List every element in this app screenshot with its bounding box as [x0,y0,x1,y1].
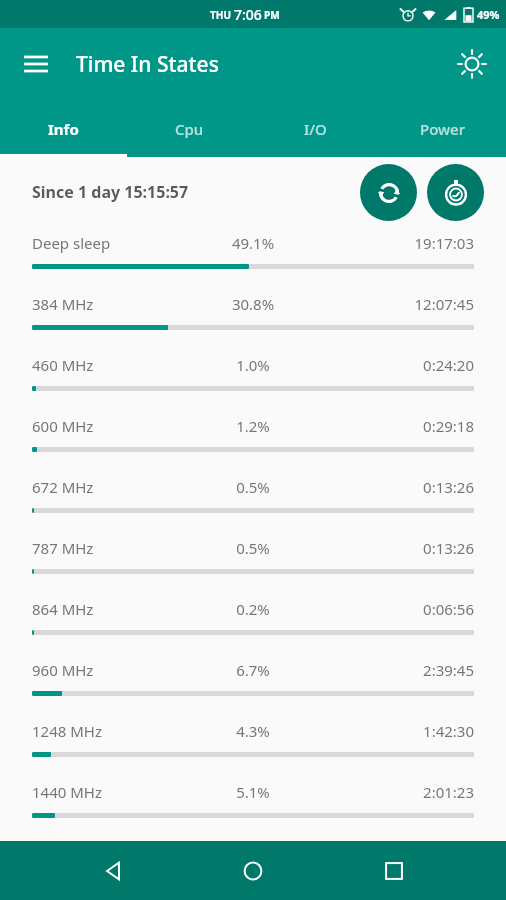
staticText: 672 MHz [32,477,207,497]
staticText: 0:24:20 [299,355,474,375]
staticText: 0:13:26 [299,477,474,497]
button[interactable]: 787 MHz [0,532,506,593]
staticText: 1248 MHz [32,721,207,741]
staticText: 5.1% [207,782,299,802]
staticText: Deep sleep [32,233,207,253]
button[interactable]: 460 MHz [0,349,506,410]
staticText: 49.1% [207,233,299,253]
button[interactable]: I/O [252,100,379,157]
staticText: 600 MHz [32,416,207,436]
staticText: I/O [304,119,327,139]
button[interactable]: 672 MHz [0,471,506,532]
staticText: 2:01:23 [299,782,474,802]
staticText: 6.7% [207,660,299,680]
staticText: Power [420,119,466,139]
staticText: 460 MHz [32,355,207,375]
staticText: 2:39:45 [299,660,474,680]
staticText: 0:29:18 [299,416,474,436]
button[interactable]: Recent apps [366,843,422,899]
button[interactable]: 1248 MHz [0,715,506,776]
button[interactable]: 384 MHz [0,288,506,349]
button[interactable]: Refresh [360,164,417,221]
staticText: 0:13:26 [299,538,474,558]
staticText: 0.5% [207,538,299,558]
staticText: 1440 MHz [32,782,207,802]
button[interactable]: 1440 MHz [0,776,506,837]
staticText: 0.2% [207,599,299,619]
staticText: 49% [477,7,500,22]
staticText: 4.3% [207,721,299,741]
staticText: 0:06:56 [299,599,474,619]
button[interactable]: Open navigation menu [12,40,60,88]
button[interactable]: 864 MHz [0,593,506,654]
button[interactable]: Home [225,843,281,899]
staticText: 7:06 [234,5,262,24]
staticText: THU [210,8,231,22]
button[interactable]: 600 MHz [0,410,506,471]
staticText: 0.5% [207,477,299,497]
button[interactable]: Back [85,843,141,899]
staticText: 19:17:03 [299,233,474,253]
staticText: 960 MHz [32,660,207,680]
button[interactable]: Power [379,100,506,157]
staticText: 864 MHz [32,599,207,619]
staticText: 1:42:30 [299,721,474,741]
staticText: 1.2% [207,416,299,436]
button[interactable]: Cpu [126,100,252,157]
button[interactable]: Info [0,100,126,157]
staticText: Time In States [76,50,219,79]
staticText: 30.8% [207,294,299,314]
button[interactable]: Reset timer [427,164,484,221]
staticText: Cpu [175,119,204,139]
staticText: Since 1 day 15:15:57 [32,181,189,203]
staticText: PM [264,8,280,22]
button[interactable]: Toggle theme brightness [448,40,496,88]
staticText: 787 MHz [32,538,207,558]
button[interactable]: Deep sleep [0,227,506,288]
button[interactable]: 960 MHz [0,654,506,715]
staticText: Info [48,119,79,139]
staticText: 12:07:45 [299,294,474,314]
staticText: 1.0% [207,355,299,375]
staticText: 384 MHz [32,294,207,314]
